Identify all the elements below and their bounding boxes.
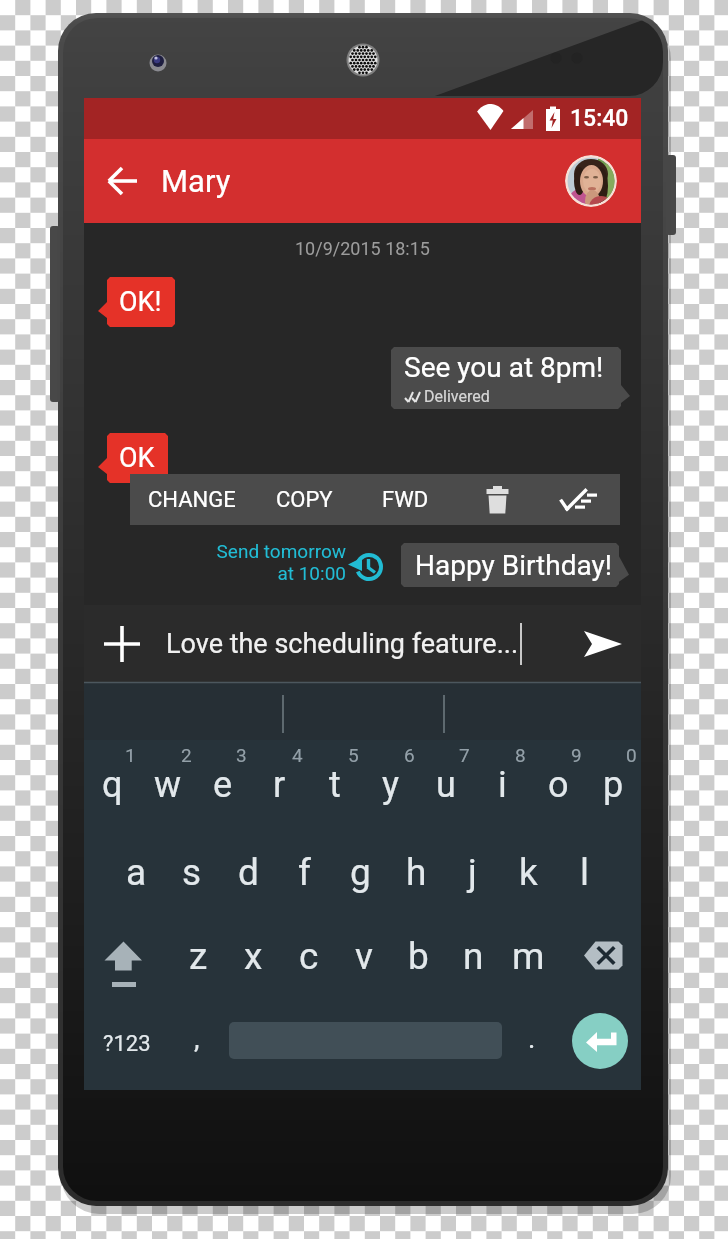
- staticText: OK!: [119, 286, 162, 318]
- staticText: 3: [236, 744, 247, 766]
- button[interactable]: x: [226, 915, 281, 997]
- button[interactable]: f: [276, 831, 332, 913]
- staticText: l: [580, 851, 589, 894]
- button[interactable]: Contact photo: [565, 155, 617, 207]
- button[interactable]: .: [506, 1002, 556, 1080]
- staticText: 1: [125, 744, 136, 766]
- button[interactable]: Back: [84, 139, 162, 223]
- staticText: COPY: [276, 487, 333, 513]
- staticText: ,: [194, 1022, 200, 1055]
- button[interactable]: 0: [585, 738, 641, 822]
- staticText: See you at 8pm!: [404, 351, 604, 384]
- button[interactable]: 1: [84, 738, 140, 822]
- button[interactable]: b: [391, 915, 446, 997]
- staticText: i: [498, 764, 507, 806]
- staticText: w: [154, 764, 182, 806]
- staticText: x: [244, 935, 263, 978]
- button[interactable]: Scheduled send: [348, 547, 388, 587]
- staticText: q: [102, 764, 123, 806]
- staticText: Delivered: [424, 387, 490, 406]
- button[interactable]: 6: [363, 738, 419, 822]
- staticText: p: [603, 764, 624, 806]
- button[interactable]: z: [171, 915, 226, 997]
- staticText: 4: [292, 744, 303, 766]
- staticText: 6: [404, 744, 415, 766]
- staticText: 8: [515, 744, 526, 766]
- staticText: 10/9/2015 18:15: [295, 238, 430, 259]
- staticText: j: [468, 851, 477, 894]
- staticText: OK: [119, 442, 155, 474]
- staticText: a: [126, 851, 147, 894]
- staticText: s: [182, 851, 202, 894]
- button[interactable]: Backspace: [556, 920, 636, 1002]
- staticText: h: [406, 851, 427, 894]
- button[interactable]: See you at 8pm!: [391, 347, 630, 409]
- button[interactable]: 3: [195, 738, 251, 822]
- staticText: o: [548, 764, 569, 806]
- staticText: y: [382, 764, 400, 806]
- staticText: 7: [459, 744, 470, 766]
- staticText: CHANGE: [148, 487, 236, 513]
- button[interactable]: Enter: [572, 1013, 628, 1069]
- button[interactable]: v: [336, 915, 391, 997]
- staticText: c: [299, 935, 319, 978]
- staticText: 2: [181, 744, 192, 766]
- button[interactable]: s: [164, 831, 220, 913]
- staticText: u: [436, 764, 456, 806]
- button[interactable]: h: [388, 831, 444, 913]
- staticText: ?123: [103, 1031, 151, 1057]
- staticText: Mary: [161, 163, 231, 199]
- button[interactable]: Send: [565, 605, 641, 682]
- button[interactable]: Delete: [456, 474, 538, 525]
- staticText: 0: [626, 744, 637, 766]
- staticText: e: [213, 764, 233, 806]
- staticText: 9: [571, 744, 582, 766]
- button[interactable]: CHANGE: [130, 474, 254, 525]
- staticText: Send tomorrow: [216, 540, 346, 562]
- staticText: k: [519, 851, 538, 894]
- staticText: FWD: [382, 487, 429, 513]
- button[interactable]: OK: [98, 433, 168, 483]
- button[interactable]: Happy Birthday!: [401, 543, 629, 587]
- staticText: r: [273, 764, 286, 806]
- button[interactable]: 9: [530, 738, 586, 822]
- staticText: f: [298, 851, 311, 894]
- button[interactable]: Select all: [538, 474, 620, 525]
- staticText: Love the scheduling feature...: [166, 628, 519, 660]
- staticText: b: [408, 935, 429, 978]
- staticText: n: [463, 935, 484, 978]
- button[interactable]: j: [444, 831, 500, 913]
- button[interactable]: 5: [307, 738, 363, 822]
- button[interactable]: ,: [172, 1002, 222, 1080]
- button[interactable]: COPY: [254, 474, 355, 525]
- staticText: g: [350, 851, 371, 894]
- button[interactable]: 7: [418, 738, 474, 822]
- staticText: d: [238, 851, 259, 894]
- button[interactable]: m: [501, 915, 556, 997]
- staticText: at 10:00: [277, 562, 346, 584]
- staticText: 15:40: [570, 105, 629, 132]
- button[interactable]: a: [108, 831, 164, 913]
- button[interactable]: d: [220, 831, 276, 913]
- button[interactable]: 4: [251, 738, 307, 822]
- button[interactable]: FWD: [355, 474, 456, 525]
- staticText: 5: [348, 744, 359, 766]
- button[interactable]: Add attachment: [84, 605, 160, 682]
- button[interactable]: Shift: [84, 920, 140, 1002]
- staticText: t: [329, 764, 341, 806]
- staticText: z: [189, 935, 208, 978]
- button[interactable]: ?123: [84, 1002, 158, 1080]
- button[interactable]: OK!: [98, 277, 175, 327]
- button[interactable]: c: [281, 915, 336, 997]
- button[interactable]: k: [500, 831, 556, 913]
- button[interactable]: 2: [140, 738, 196, 822]
- button[interactable]: l: [556, 831, 612, 913]
- button[interactable]: g: [332, 831, 388, 913]
- staticText: Happy Birthday!: [415, 549, 612, 582]
- button[interactable]: 8: [474, 738, 530, 822]
- staticText: m: [512, 935, 545, 978]
- staticText: .: [528, 1022, 536, 1055]
- staticText: v: [355, 935, 373, 978]
- button[interactable]: n: [446, 915, 501, 997]
